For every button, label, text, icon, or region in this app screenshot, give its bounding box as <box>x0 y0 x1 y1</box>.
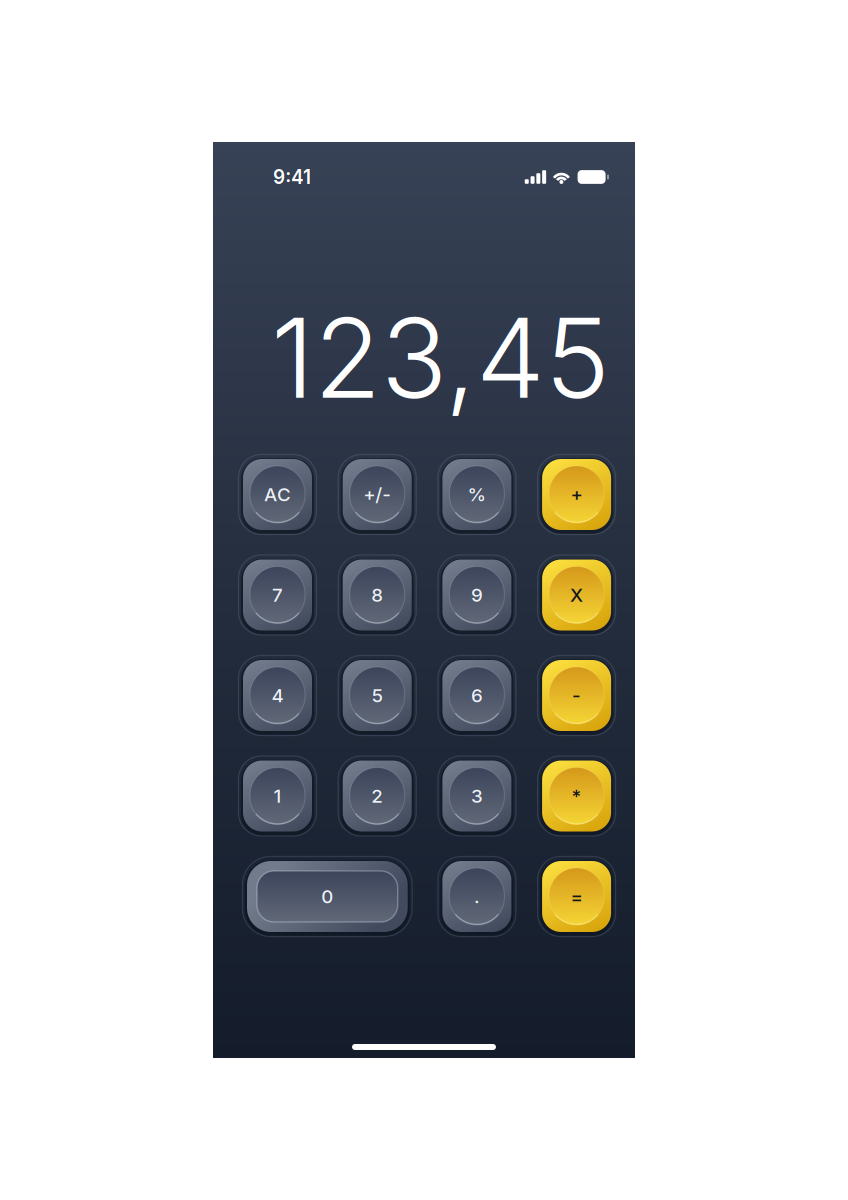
staticText: 2 <box>371 785 383 807</box>
button[interactable]: X <box>542 559 611 630</box>
staticText: 6 <box>471 684 483 707</box>
staticText: . <box>474 885 480 908</box>
staticText: 9 <box>471 584 483 606</box>
button[interactable]: 7 <box>243 559 312 630</box>
button[interactable]: 4 <box>243 660 312 731</box>
button[interactable]: 0 <box>247 861 408 932</box>
button[interactable]: * <box>542 760 611 831</box>
button[interactable]: . <box>442 861 511 932</box>
button[interactable]: 8 <box>343 559 412 630</box>
button[interactable]: 3 <box>442 760 511 831</box>
staticText: % <box>467 483 486 506</box>
button[interactable]: 6 <box>442 660 511 731</box>
staticText: 4 <box>271 684 283 707</box>
button[interactable]: - <box>542 660 611 731</box>
staticText: +/- <box>363 483 391 506</box>
staticText: 0 <box>321 885 333 908</box>
button[interactable]: AC <box>243 459 312 530</box>
staticText: 3 <box>471 785 483 807</box>
staticText: 8 <box>371 584 383 606</box>
staticText: 1 <box>273 785 281 807</box>
button[interactable]: = <box>542 861 611 932</box>
staticText: 7 <box>272 584 283 606</box>
staticText: 9:41 <box>273 165 311 188</box>
button[interactable]: 5 <box>343 660 412 731</box>
button[interactable]: % <box>442 459 511 530</box>
button[interactable]: + <box>542 459 611 530</box>
staticText: X <box>570 584 583 606</box>
button[interactable]: 2 <box>343 760 412 831</box>
button[interactable]: 9 <box>442 559 511 630</box>
staticText: 123,45 <box>271 292 610 424</box>
button[interactable]: +/- <box>343 459 412 530</box>
button[interactable]: 1 <box>243 760 312 831</box>
staticText: 5 <box>372 684 383 707</box>
staticText: - <box>572 684 581 707</box>
staticText: * <box>572 785 582 807</box>
staticText: + <box>571 483 583 506</box>
staticText: AC <box>264 483 291 506</box>
staticText: = <box>571 885 583 908</box>
